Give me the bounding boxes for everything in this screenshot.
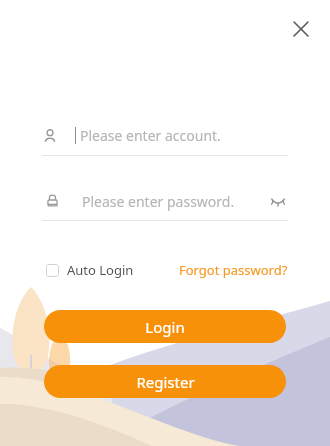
button[interactable]: Auto Login — [42, 257, 150, 283]
button[interactable]: Show password — [264, 187, 292, 215]
button[interactable]: Please enter password. — [42, 188, 288, 220]
button[interactable]: Register — [44, 365, 286, 398]
staticText: Forgot password? — [179, 261, 288, 279]
button[interactable]: Close — [286, 14, 316, 44]
staticText: Please enter password. — [82, 192, 235, 211]
staticText: Register — [136, 372, 195, 392]
button[interactable]: Please enter account. — [42, 122, 288, 156]
staticText: Please enter account. — [80, 126, 221, 145]
staticText: Auto Login — [67, 261, 134, 279]
staticText: Login — [145, 317, 185, 337]
button[interactable]: Forgot password? — [163, 257, 288, 283]
button[interactable]: Login — [44, 310, 286, 343]
